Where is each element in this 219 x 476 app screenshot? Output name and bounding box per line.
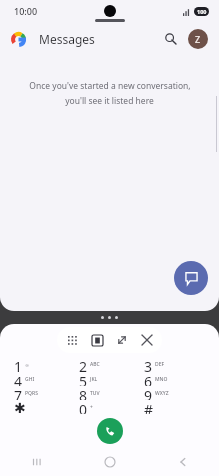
button[interactable]: Start chat	[174, 261, 208, 295]
button[interactable]: Call	[97, 418, 123, 444]
button[interactable]: 5	[79, 372, 144, 386]
button[interactable]: Apps	[62, 330, 82, 350]
staticText: Messages	[39, 31, 95, 47]
button[interactable]: 0	[79, 400, 144, 414]
staticText: 4	[14, 372, 23, 386]
button[interactable]: Full screen	[112, 330, 132, 350]
staticText: TUV	[90, 390, 100, 397]
staticText: 2	[79, 357, 88, 372]
button[interactable]: 2	[79, 357, 144, 372]
staticText: 10:00	[14, 5, 38, 17]
staticText: 9	[144, 386, 153, 400]
staticText: 0	[79, 400, 88, 414]
staticText: Once you've started a new conversation,	[29, 80, 191, 92]
staticText: +	[90, 404, 93, 411]
staticText: 6	[144, 372, 153, 386]
button[interactable]: #	[144, 400, 209, 414]
staticText: ✱	[14, 400, 26, 414]
button[interactable]: Home	[73, 448, 146, 476]
button[interactable]: Search	[160, 28, 182, 50]
staticText: #	[144, 400, 154, 414]
button[interactable]: ✱	[14, 400, 79, 414]
button[interactable]: 6	[144, 372, 209, 386]
staticText: 3	[144, 357, 153, 372]
button[interactable]: 9	[144, 386, 209, 400]
button[interactable]: 7	[14, 386, 79, 400]
staticText: ABC	[90, 361, 100, 368]
staticText: Z	[195, 33, 201, 45]
button[interactable]: 4	[14, 372, 79, 386]
staticText: JKL	[90, 376, 98, 383]
staticText: GHI	[25, 376, 35, 383]
staticText: ∞	[25, 362, 30, 368]
staticText: 1	[14, 357, 23, 372]
staticText: 5	[79, 372, 88, 386]
staticText: you'll see it listed here	[65, 95, 154, 107]
button[interactable]: Pop up view	[87, 330, 107, 350]
staticText: 7	[14, 386, 23, 400]
staticText: MNO	[155, 376, 168, 383]
button[interactable]: Close	[137, 330, 157, 350]
button[interactable]: Account	[188, 29, 208, 49]
staticText: PQRS	[25, 390, 38, 397]
staticText: 100	[197, 8, 207, 15]
staticText: WXYZ	[155, 390, 169, 397]
button[interactable]: 8	[79, 386, 144, 400]
button[interactable]: Back	[146, 448, 219, 476]
button[interactable]: Recents	[0, 448, 73, 476]
button[interactable]: 1	[14, 357, 79, 372]
staticText: 8	[79, 386, 88, 400]
staticText: DEF	[155, 361, 165, 368]
button[interactable]: 3	[144, 357, 209, 372]
